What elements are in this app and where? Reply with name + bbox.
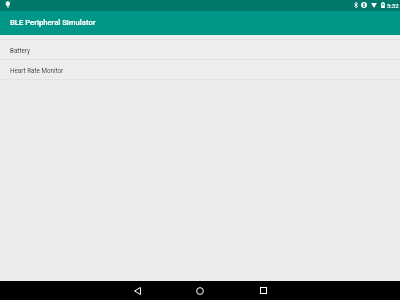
staticText: Heart Rate Monitor xyxy=(10,67,64,74)
button[interactable]: Battery xyxy=(0,40,400,59)
staticText: BLE Peripheral Simulator xyxy=(10,18,96,27)
button[interactable]: Back xyxy=(125,281,149,300)
button[interactable]: Recent apps xyxy=(251,281,275,300)
button[interactable]: Home xyxy=(188,281,212,300)
staticText: Battery xyxy=(10,47,30,54)
staticText: 5:32 xyxy=(387,2,399,9)
button[interactable]: Heart Rate Monitor xyxy=(0,60,400,79)
